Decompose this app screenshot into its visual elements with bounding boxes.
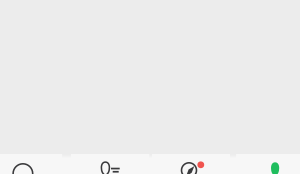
button[interactable]: Home — [0, 154, 62, 174]
button[interactable]: Contacts — [71, 154, 149, 174]
button[interactable]: Profile — [236, 154, 300, 174]
button[interactable]: Explore — [152, 154, 230, 174]
